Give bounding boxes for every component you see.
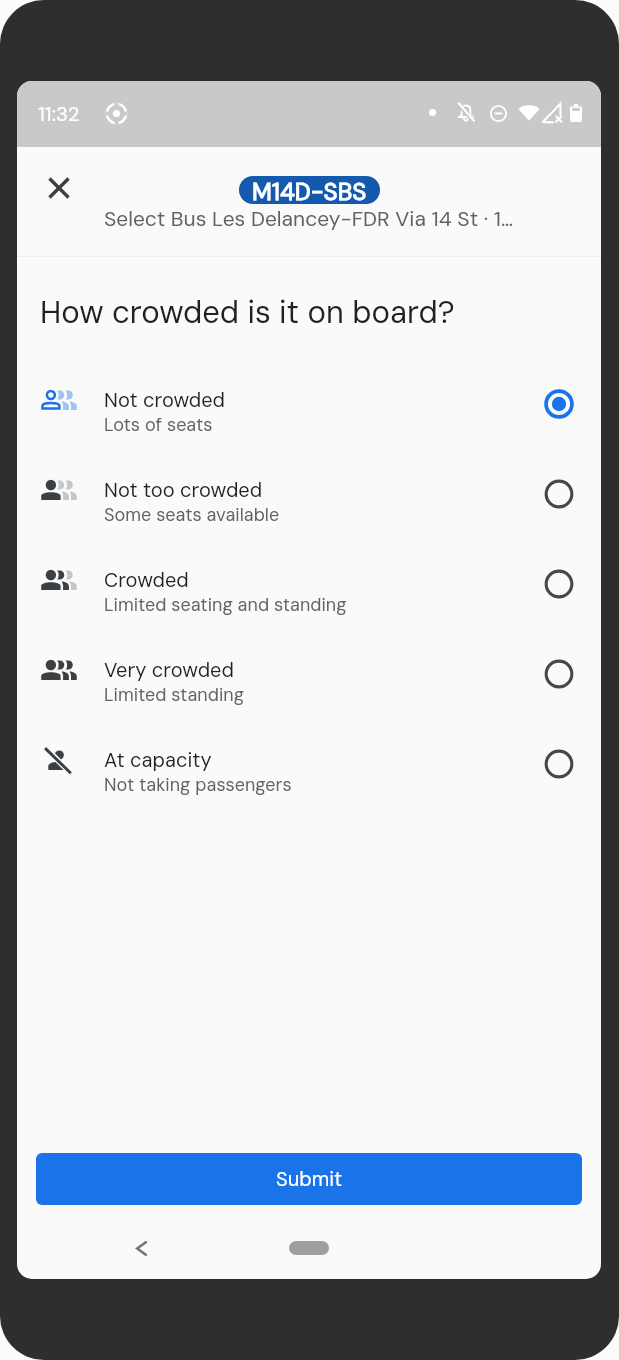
- staticText: 11:32: [38, 101, 80, 127]
- staticText: Lots of seats: [104, 413, 213, 436]
- button[interactable]: Crowded: [17, 546, 601, 636]
- staticText: Very crowded: [104, 657, 234, 683]
- button[interactable]: Not too crowded: [17, 456, 601, 546]
- staticText: Some seats available: [104, 503, 280, 526]
- staticText: Submit: [276, 1166, 343, 1192]
- button[interactable]: Back: [119, 1226, 163, 1270]
- staticText: How crowded is it on board?: [40, 292, 455, 332]
- button[interactable]: Submit: [36, 1153, 582, 1205]
- button[interactable]: Not crowded: [17, 366, 601, 456]
- staticText: M14D-SBS: [252, 176, 367, 204]
- button[interactable]: At capacity: [17, 726, 601, 816]
- staticText: Select Bus Les Delancey-FDR Via 14 St · …: [104, 205, 514, 232]
- staticText: Not crowded: [104, 387, 225, 413]
- staticText: Not too crowded: [104, 477, 263, 503]
- staticText: Limited seating and standing: [104, 593, 347, 616]
- button[interactable]: Very crowded: [17, 636, 601, 726]
- staticText: Not taking passengers: [104, 773, 292, 796]
- staticText: Limited standing: [104, 683, 244, 706]
- staticText: Crowded: [104, 567, 189, 593]
- button[interactable]: Close: [37, 166, 81, 210]
- staticText: At capacity: [104, 747, 212, 773]
